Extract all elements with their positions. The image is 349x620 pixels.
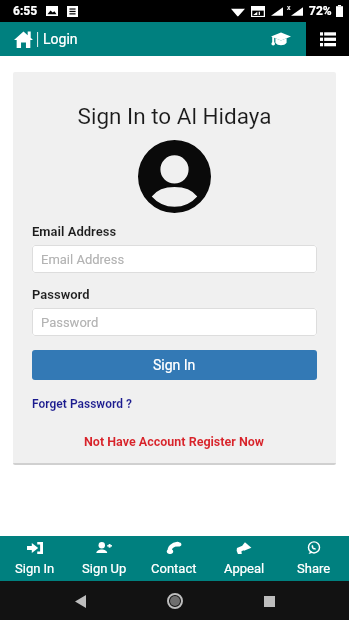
staticText: Appeal — [224, 561, 265, 576]
staticText: 6:55 — [13, 4, 38, 18]
staticText: Sign In — [153, 357, 196, 373]
staticText: Share — [297, 561, 331, 576]
staticText: Not Have Account Register Now — [84, 434, 265, 449]
staticText: Forget Password ? — [32, 397, 132, 411]
button[interactable]: Back — [65, 586, 95, 616]
button[interactable]: Not Have Account Register Now — [32, 434, 317, 449]
button[interactable]: Courses — [267, 25, 295, 53]
button[interactable]: Forget Password ? — [32, 397, 132, 411]
staticText: Contact — [151, 561, 197, 576]
staticText: Password — [32, 287, 90, 302]
staticText: Password — [41, 315, 99, 330]
button[interactable]: Home — [160, 586, 190, 616]
button[interactable]: Contact — [139, 536, 209, 581]
staticText: 72% — [309, 4, 332, 18]
button[interactable]: Sign Up — [69, 536, 139, 581]
staticText: Email Address — [32, 224, 117, 239]
button[interactable]: Share — [279, 536, 349, 581]
button[interactable]: Menu — [306, 22, 349, 56]
button[interactable]: Sign In — [32, 350, 317, 380]
staticText: Email Address — [41, 252, 125, 267]
button[interactable]: Sign In — [0, 536, 69, 581]
staticText: Sign Up — [82, 561, 127, 576]
staticText: Sign In — [15, 561, 55, 576]
staticText: x — [287, 4, 291, 12]
button[interactable]: Appeal — [209, 536, 279, 581]
staticText: Sign In to Al Hidaya — [32, 103, 317, 129]
staticText: Login — [43, 31, 78, 47]
button[interactable]: Recents — [254, 586, 284, 616]
button[interactable]: Home — [14, 30, 33, 49]
